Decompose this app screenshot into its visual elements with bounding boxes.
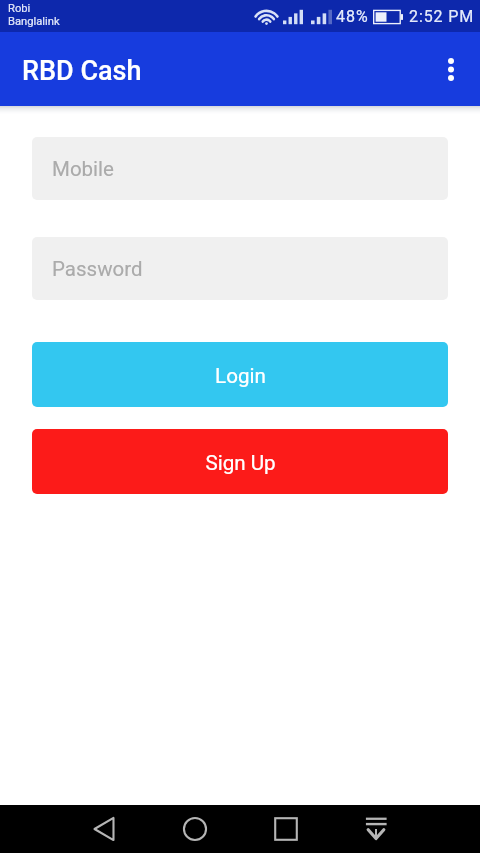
button[interactable]: Back bbox=[80, 805, 128, 853]
button[interactable]: Sign Up bbox=[32, 429, 448, 494]
staticText: Banglalink bbox=[8, 15, 60, 28]
button[interactable]: Password bbox=[32, 237, 448, 300]
staticText: Mobile bbox=[52, 157, 114, 181]
button[interactable]: Hide keyboard bbox=[352, 805, 400, 853]
button[interactable]: Login bbox=[32, 342, 448, 407]
staticText: Password bbox=[52, 257, 143, 281]
button[interactable]: Mobile bbox=[32, 137, 448, 200]
staticText: 2:52 PM bbox=[409, 7, 475, 26]
staticText: RBD Cash bbox=[22, 55, 142, 87]
button[interactable]: Home bbox=[171, 805, 219, 853]
staticText: 48% bbox=[336, 7, 369, 26]
staticText: Login bbox=[215, 364, 266, 388]
button[interactable]: More options bbox=[427, 45, 475, 93]
staticText: Robi bbox=[8, 2, 31, 15]
staticText: Sign Up bbox=[205, 451, 276, 475]
button[interactable]: Recent apps bbox=[262, 805, 310, 853]
